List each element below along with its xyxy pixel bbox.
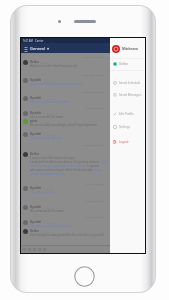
staticText: Ryuichi [30, 220, 42, 224]
staticText: Ryuichi [30, 111, 42, 115]
staticText: is update [86, 164, 100, 168]
button[interactable]: pixie [23, 119, 107, 127]
staticText: Online [119, 62, 128, 66]
button[interactable]: Ryuichi [23, 78, 107, 86]
staticText: 9:41 AM [23, 39, 33, 43]
button[interactable]: Ryuichi [23, 111, 107, 119]
staticText: on/cloud/thing/fast/work [30, 172, 65, 176]
button[interactable]: Code [38, 248, 41, 251]
button[interactable]: Logout [110, 137, 145, 147]
staticText: Fri, Jun 08, 2021 [86, 182, 105, 185]
staticText: Welcome to the Cloud Community! [30, 64, 78, 68]
staticText: Just a reminder for team [30, 115, 64, 119]
staticText: Edit Profile [119, 112, 134, 116]
staticText: Let us join the line [30, 190, 55, 194]
staticText: Fri, Jun 08, 2021 [86, 215, 105, 218]
staticText: There is a personal invitation [30, 100, 70, 104]
staticText: Mitchnova [122, 47, 138, 51]
button[interactable]: Ryuichi [23, 205, 107, 213]
button[interactable]: Ryuichi [23, 220, 107, 228]
button[interactable]: Keiko [23, 60, 107, 68]
staticText: I need a few lines about the topic [30, 156, 75, 160]
button[interactable]: Ryuichi [23, 96, 107, 104]
button[interactable]: Saved Messages [110, 90, 145, 100]
staticText: Mon, Feb 26, 2020 [83, 73, 105, 76]
staticText: Ryuichi [30, 78, 42, 82]
staticText: listed here [94, 168, 107, 172]
button[interactable]: Ryuichi [23, 132, 107, 140]
button[interactable]: Edit Profile [110, 109, 145, 119]
staticText: Tue, Jun 08, 2021 [85, 199, 105, 202]
staticText: Fri, Jun 05, 2020 [86, 106, 105, 109]
staticText: Keiko [30, 152, 39, 156]
staticText: Ryuichi [30, 205, 42, 209]
staticText: Keiko [30, 229, 39, 233]
staticText: We can modify accordingly, detail? how o… [30, 123, 107, 127]
staticText: Ryuichi [30, 186, 42, 190]
button[interactable]: Keiko [23, 152, 107, 176]
staticText: Carrier [35, 39, 44, 43]
button[interactable]: Send [43, 248, 46, 251]
staticText: Don't forget to add yourself to the cale… [30, 233, 107, 237]
button[interactable]: Mitchnova [110, 42, 145, 55]
staticText: Wed, Feb 12, 2020 [83, 55, 105, 58]
staticText: Consoles it, going to by a week [30, 224, 72, 228]
staticText: Logout [119, 140, 129, 144]
button[interactable]: Online [110, 58, 145, 69]
staticText: Not involved at the same [30, 209, 64, 213]
staticText: General ▾ [30, 46, 50, 51]
staticText: Tue, Mar 10, 2020 [84, 90, 105, 93]
button[interactable]: Settings [110, 122, 145, 132]
button[interactable]: Emoji [28, 248, 31, 251]
staticText: Keiko [30, 60, 39, 64]
button[interactable]: Attach [23, 248, 26, 251]
staticText: pixie [30, 119, 38, 123]
button[interactable]: Keiko [23, 229, 107, 237]
staticText: whenever our time begin while the knowle… [30, 168, 94, 172]
staticText: www.cloudguide.getthing.io/start/guides [30, 164, 86, 168]
button[interactable]: Open navigation menu [24, 46, 28, 50]
staticText: Ryuichi [30, 132, 42, 136]
staticText: Support of Service has joined the team [30, 82, 83, 86]
staticText: Mon, Jun 08, 2021 [84, 143, 105, 146]
staticText: Settings [119, 125, 130, 129]
button[interactable]: Ryuichi [23, 186, 107, 194]
button[interactable]: Mention [33, 248, 36, 251]
staticText: Saved Schedule [119, 81, 141, 85]
staticText: www.cloudguid [100, 160, 107, 164]
staticText: Consolidate all the topic [30, 136, 63, 140]
staticText: I asked all members our device link gett… [30, 160, 100, 164]
staticText: Ryuichi [30, 96, 42, 100]
button[interactable]: Saved Schedule [110, 78, 145, 88]
staticText: Saved Messages [119, 93, 142, 97]
